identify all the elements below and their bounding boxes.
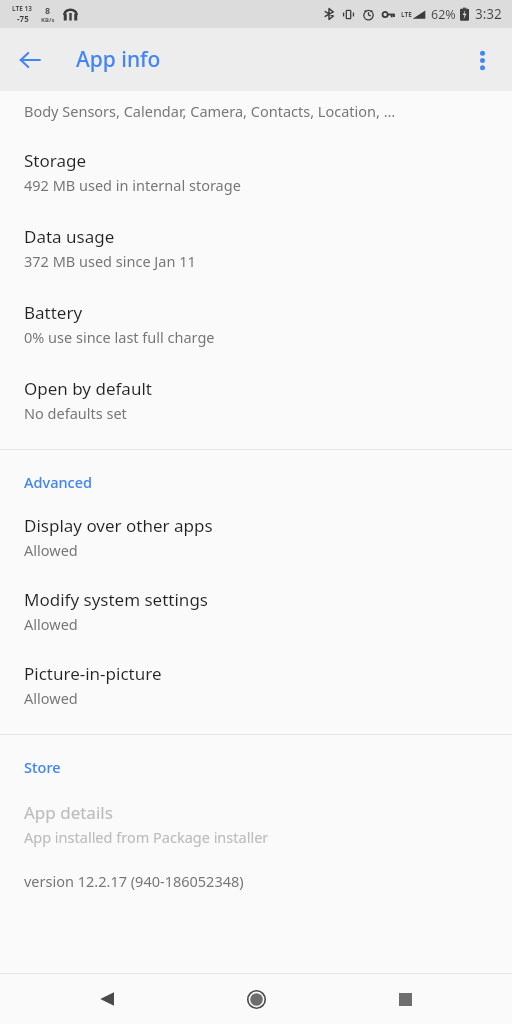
button[interactable]: Modify system settings xyxy=(0,576,512,650)
staticText: KB/s xyxy=(41,16,55,24)
staticText: Battery xyxy=(24,301,83,324)
button[interactable]: App details xyxy=(0,793,512,857)
staticText: 492 MB used in internal storage xyxy=(24,175,241,195)
staticText: -75 xyxy=(17,13,29,24)
staticText: Open by default xyxy=(24,377,152,400)
button[interactable]: Display over other apps xyxy=(0,502,512,576)
button[interactable]: Body Sensors, Calendar, Camera, Contacts… xyxy=(0,91,512,135)
button[interactable]: Picture-in-picture xyxy=(0,650,512,722)
staticText: Display over other apps xyxy=(24,514,213,537)
staticText: No defaults set xyxy=(24,403,127,423)
staticText: Allowed xyxy=(24,614,78,634)
staticText: Modify system settings xyxy=(24,588,208,611)
button[interactable]: Open by default xyxy=(0,363,512,437)
button[interactable]: Back xyxy=(90,982,124,1016)
button[interactable]: Storage xyxy=(0,135,512,211)
staticText: LTE 13 xyxy=(12,4,33,13)
button[interactable]: Back xyxy=(6,36,54,84)
button[interactable]: More options xyxy=(458,36,506,84)
staticText: 3:32 xyxy=(475,5,502,23)
staticText: Allowed xyxy=(24,688,78,708)
staticText: Body Sensors, Calendar, Camera, Contacts… xyxy=(24,101,396,121)
staticText: Data usage xyxy=(24,225,115,248)
button[interactable]: Recent apps xyxy=(388,982,422,1016)
button[interactable]: Data usage xyxy=(0,211,512,287)
staticText: 0% use since last full charge xyxy=(24,327,215,347)
staticText: App info xyxy=(76,45,161,74)
button[interactable]: Home xyxy=(239,982,273,1016)
staticText: version 12.2.17 (940-186052348) xyxy=(24,871,244,891)
staticText: Advanced xyxy=(24,472,92,492)
staticText: Allowed xyxy=(24,540,78,560)
staticText: Storage xyxy=(24,149,87,172)
staticText: Picture-in-picture xyxy=(24,662,162,685)
staticText: LTE xyxy=(401,10,412,19)
button[interactable]: Battery xyxy=(0,287,512,363)
staticText: 8 xyxy=(45,4,51,16)
staticText: 62% xyxy=(431,6,456,23)
staticText: App details xyxy=(24,801,113,824)
staticText: 372 MB used since Jan 11 xyxy=(24,251,196,271)
staticText: Store xyxy=(24,757,61,777)
staticText: App installed from Package installer xyxy=(24,827,269,847)
